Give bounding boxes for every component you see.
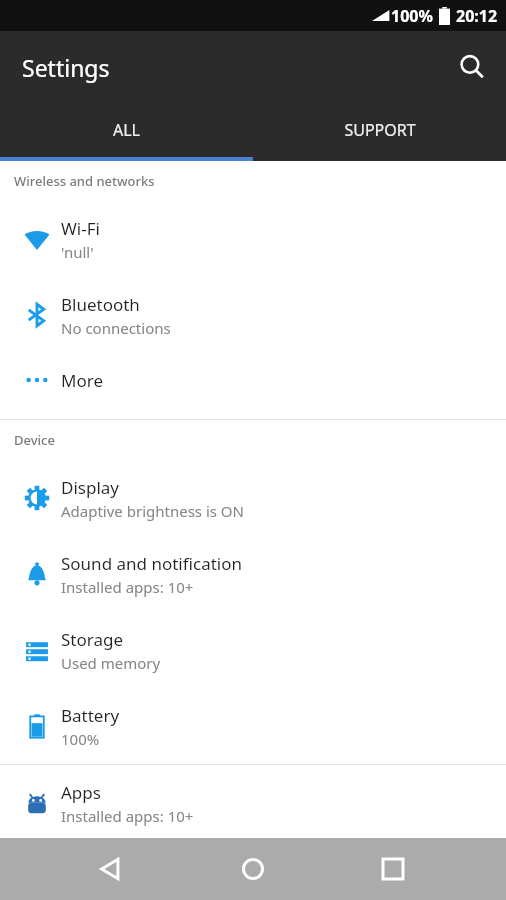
button[interactable]: Wi-Fi <box>0 201 506 277</box>
staticText: Installed apps: 10+ <box>61 577 194 597</box>
button[interactable]: Storage <box>0 612 506 688</box>
staticText: Sound and notification <box>61 552 242 575</box>
staticText: Installed apps: 10+ <box>61 806 194 826</box>
staticText: Settings <box>22 52 110 83</box>
staticText: 100% <box>61 729 100 749</box>
staticText: Device <box>14 431 55 449</box>
button[interactable]: Back <box>86 845 134 893</box>
staticText: Wireless and networks <box>14 172 155 190</box>
button[interactable]: Recent apps <box>369 845 417 893</box>
button[interactable]: Search <box>448 43 496 91</box>
staticText: 'null' <box>61 242 94 262</box>
staticText: Wi-Fi <box>61 217 100 240</box>
staticText: SUPPORT <box>344 119 416 141</box>
staticText: Adaptive brightness is ON <box>61 501 244 521</box>
staticText: Storage <box>61 628 124 651</box>
button[interactable]: Sound and notification <box>0 536 506 612</box>
button[interactable]: SUPPORT <box>253 103 506 157</box>
staticText: Bluetooth <box>61 293 140 316</box>
button[interactable]: Display <box>0 460 506 536</box>
staticText: Used memory <box>61 653 161 673</box>
staticText: Display <box>61 476 119 499</box>
staticText: More <box>61 369 103 392</box>
button[interactable]: Battery <box>0 688 506 764</box>
button[interactable]: Bluetooth <box>0 277 506 353</box>
staticText: Apps <box>61 781 101 804</box>
button[interactable]: Home <box>229 845 277 893</box>
button[interactable]: More <box>0 353 506 407</box>
staticText: ALL <box>113 119 140 141</box>
staticText: 20:12 <box>456 5 498 27</box>
staticText: Battery <box>61 704 120 727</box>
button[interactable]: ALL <box>0 103 253 157</box>
staticText: No connections <box>61 318 171 338</box>
button[interactable]: Apps <box>0 765 506 841</box>
staticText: 100% <box>391 5 433 27</box>
